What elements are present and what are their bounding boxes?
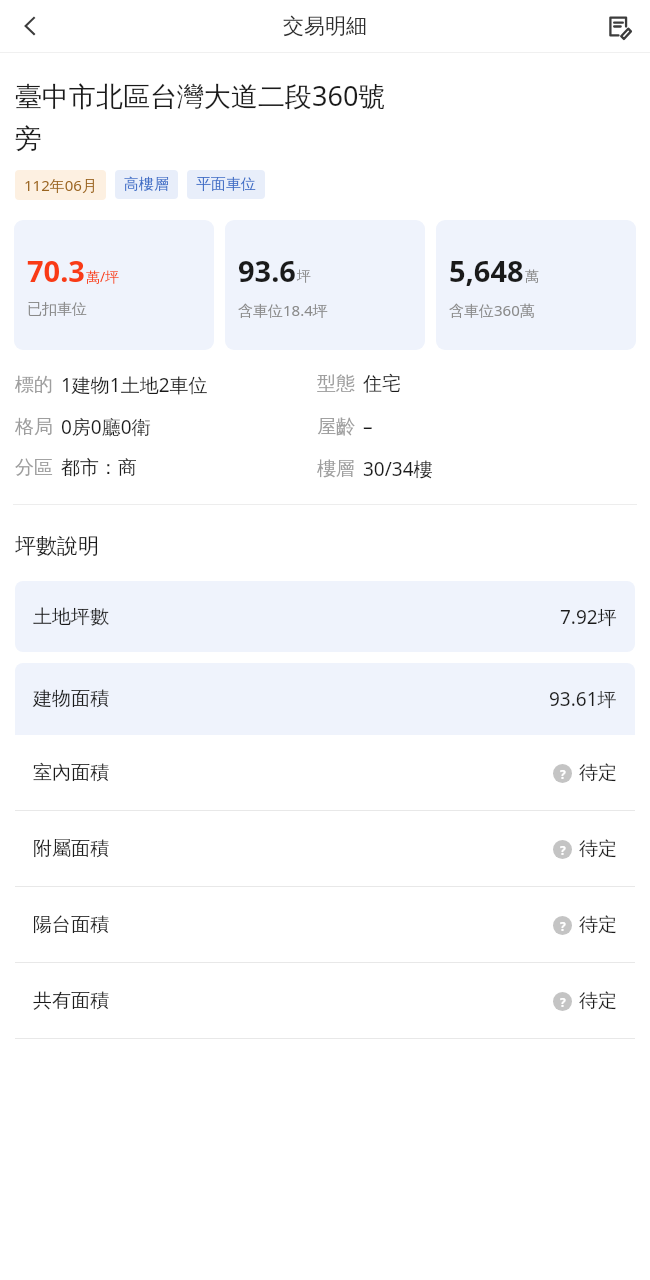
staticText: 93.6 (238, 251, 296, 290)
staticText: 30/34樓 (363, 456, 433, 482)
staticText: 住宅 (363, 372, 401, 396)
button[interactable]: 平面車位 (187, 170, 265, 199)
staticText: 室內面積 (33, 761, 109, 785)
staticText: 93.61坪 (549, 686, 617, 712)
staticText: 格局 (15, 415, 53, 439)
staticText: 型態 (317, 372, 355, 396)
staticText: 0房0廳0衛 (61, 414, 151, 440)
staticText: 待定 (579, 837, 617, 861)
staticText: ? (560, 842, 566, 858)
staticText: 附屬面積 (33, 837, 109, 861)
staticText: ? (560, 766, 566, 782)
staticText: 共有面積 (33, 989, 109, 1013)
button[interactable]: 112年06月 (15, 170, 106, 200)
staticText: 坪 (297, 268, 311, 286)
button[interactable]: 室內面積 (15, 735, 635, 811)
staticText: 分區 (15, 456, 53, 480)
staticText: 屋齡 (317, 415, 355, 439)
staticText: 待定 (579, 913, 617, 937)
staticText: 含車位360萬 (449, 300, 535, 320)
staticText: 70.3 (27, 251, 85, 290)
staticText: 高樓層 (124, 175, 169, 194)
button[interactable]: 共有面積 (15, 963, 635, 1039)
staticText: 5,648 (449, 251, 524, 290)
button[interactable]: 土地坪數 (15, 581, 635, 652)
button[interactable]: 5,648 (436, 220, 636, 350)
staticText: 含車位18.4坪 (238, 300, 328, 320)
staticText: 旁 (15, 122, 42, 156)
staticText: ? (560, 918, 566, 934)
staticText: 樓層 (317, 457, 355, 481)
staticText: 1建物1土地2車位 (61, 372, 208, 398)
staticText: 交易明細 (283, 13, 367, 39)
staticText: 待定 (579, 761, 617, 785)
staticText: 已扣車位 (27, 300, 87, 319)
staticText: 7.92坪 (560, 604, 617, 630)
button[interactable]: 高樓層 (115, 170, 178, 199)
button[interactable]: Back (6, 2, 54, 50)
staticText: 112年06月 (24, 175, 97, 195)
button[interactable]: 70.3 (14, 220, 214, 350)
staticText: 陽台面積 (33, 913, 109, 937)
staticText: 平面車位 (196, 175, 256, 194)
button[interactable]: 陽台面積 (15, 887, 635, 963)
staticText: 標的 (15, 373, 53, 397)
staticText: 坪數說明 (15, 533, 99, 559)
staticText: 臺中市北區台灣大道二段360號 (15, 77, 386, 114)
button[interactable]: Edit note (594, 2, 642, 50)
staticText: 都市：商 (61, 456, 137, 480)
staticText: 萬 (525, 268, 539, 286)
staticText: – (363, 414, 373, 440)
staticText: 萬/坪 (86, 267, 120, 286)
staticText: 建物面積 (33, 687, 109, 711)
button[interactable]: 建物面積 (15, 663, 635, 735)
button[interactable]: 93.6 (225, 220, 425, 350)
staticText: 土地坪數 (33, 605, 109, 629)
staticText: ? (560, 994, 566, 1010)
staticText: 待定 (579, 989, 617, 1013)
button[interactable]: 附屬面積 (15, 811, 635, 887)
